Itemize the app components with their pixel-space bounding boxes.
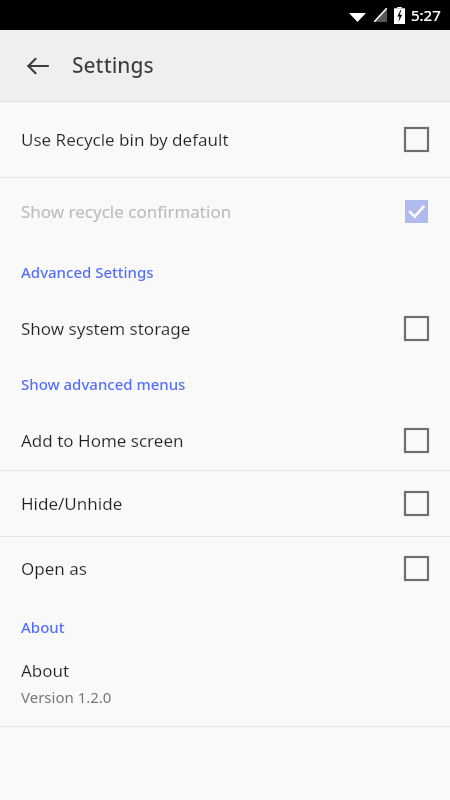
button[interactable]: Add to Home screen xyxy=(0,410,450,470)
button[interactable]: Back xyxy=(14,42,62,90)
staticText: Show recycle confirmation xyxy=(21,200,232,223)
staticText: About xyxy=(21,617,65,637)
button[interactable]: About xyxy=(0,653,450,726)
button[interactable]: Show recycle confirmation xyxy=(0,178,450,244)
staticText: Open as xyxy=(21,557,87,580)
staticText: 5:27 xyxy=(411,5,441,25)
staticText: Advanced Settings xyxy=(21,262,154,282)
staticText: About xyxy=(21,659,70,682)
staticText: Show system storage xyxy=(21,317,191,340)
staticText: Version 1.2.0 xyxy=(21,687,112,707)
staticText: Add to Home screen xyxy=(21,429,184,452)
staticText: Show advanced menus xyxy=(21,374,186,394)
button[interactable]: Open as xyxy=(0,537,450,600)
button[interactable]: Show system storage xyxy=(0,298,450,358)
staticText: Use Recycle bin by default xyxy=(21,128,229,151)
button[interactable]: Hide/Unhide xyxy=(0,471,450,536)
staticText: Settings xyxy=(72,51,154,80)
staticText: Hide/Unhide xyxy=(21,492,123,515)
button[interactable]: Use Recycle bin by default xyxy=(0,102,450,177)
